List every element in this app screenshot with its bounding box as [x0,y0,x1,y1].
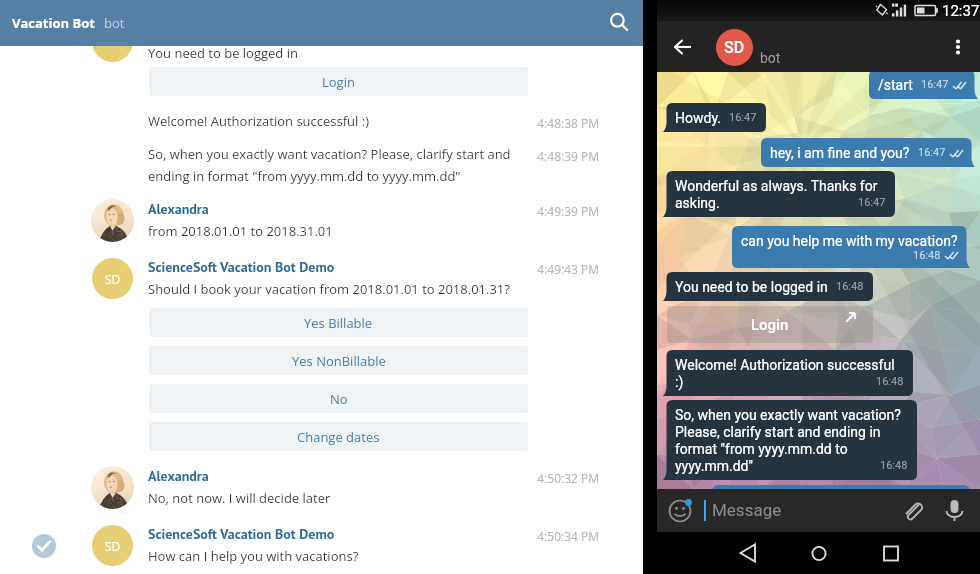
staticText: bot [760,50,781,66]
staticText: No [330,390,348,408]
staticText: 16:47 [729,111,757,124]
staticText: SD [724,38,745,57]
staticText: How can I help you with vacations? [148,547,359,565]
staticText: 16:48 [913,249,941,262]
button[interactable]: Home [791,532,847,574]
staticText: Yes NonBillable [292,352,386,370]
button[interactable]: Back [660,21,706,72]
button[interactable]: Welcome! Authorization successful :) [662,350,913,396]
button[interactable]: Recent apps [863,532,919,574]
staticText: Welcome! Authorization successful :) [675,356,895,390]
staticText: Vacation Bot [12,14,95,32]
staticText: can you help me with my vacation? [741,232,958,249]
staticText: 16:47 [921,78,949,91]
staticText: Change dates [297,428,380,446]
button[interactable]: hey, i am fine and you? [761,138,976,167]
staticText: No, not now. I will decide later [148,489,331,507]
staticText: ScienceSoft Vacation Bot Demo [148,258,335,276]
staticText: 16:48 [880,459,908,472]
button[interactable]: Howdy. [662,103,766,132]
staticText: Alexandra [148,200,209,218]
staticText: bot [104,14,125,32]
button[interactable]: SD [716,29,753,66]
button[interactable]: You need to be logged in [662,272,873,301]
staticText: SD [105,538,121,554]
staticText: 12:37 [942,2,980,20]
staticText: /start [878,76,913,93]
staticText: Alexandra [148,467,209,485]
staticText: 4:48:39 PM [443,148,599,164]
staticText: 4:50:32 PM [443,470,599,486]
button[interactable]: Emoji [668,499,692,523]
staticText: hey, i am fine and you? [770,144,910,161]
button[interactable]: Login [149,67,528,96]
button[interactable]: /start [869,70,979,99]
staticText: 16:47 [918,146,946,159]
staticText: Login [322,73,355,91]
staticText: 16:48 [836,280,864,293]
staticText: Welcome! Authorization successful :) [148,112,369,130]
staticText: ScienceSoft Vacation Bot Demo [148,525,335,543]
button[interactable]: Back [720,532,776,574]
button[interactable]: Change dates [149,422,528,451]
staticText: 16:48 [876,375,904,388]
staticText: 4:50:34 PM [443,528,599,544]
staticText: SD [105,271,121,287]
button[interactable]: Record voice message [941,497,968,524]
staticText: Howdy. [675,109,721,126]
button[interactable]: Wonderful as always. Thanks for asking. [662,171,895,217]
button[interactable]: More options [938,21,978,72]
button[interactable]: Yes Billable [149,308,528,337]
button[interactable]: Search [597,0,643,46]
button[interactable]: Login [667,306,873,343]
button[interactable]: can you help me with my vacation? [732,226,971,268]
button[interactable]: So, when you exactly want vacation? Plea… [662,400,917,480]
button[interactable]: Attach file [900,497,927,524]
button[interactable]: Yes NonBillable [149,346,528,375]
staticText: 4:49:39 PM [443,203,599,219]
staticText: You need to be logged in [148,44,298,62]
staticText: Wonderful as always. Thanks for asking. [675,177,878,211]
staticText: Login [751,316,789,334]
staticText: Should I book your vacation from 2018.01… [148,280,510,298]
staticText: So, when you exactly want vacation? Plea… [675,406,901,474]
staticText: You need to be logged in [675,278,828,295]
staticText: So, when you exactly want vacation? Plea… [148,145,511,163]
staticText: Message [712,500,782,520]
button[interactable]: No [149,384,528,413]
staticText: Yes Billable [304,314,373,332]
staticText: 4:49:43 PM [443,261,599,277]
staticText: 4:48:38 PM [443,115,599,131]
staticText: from 2018.01.01 to 2018.31.01 [148,222,333,240]
staticText: 16:47 [858,196,886,209]
staticText: ending in format "from yyyy.mm.dd to yyy… [148,167,461,185]
